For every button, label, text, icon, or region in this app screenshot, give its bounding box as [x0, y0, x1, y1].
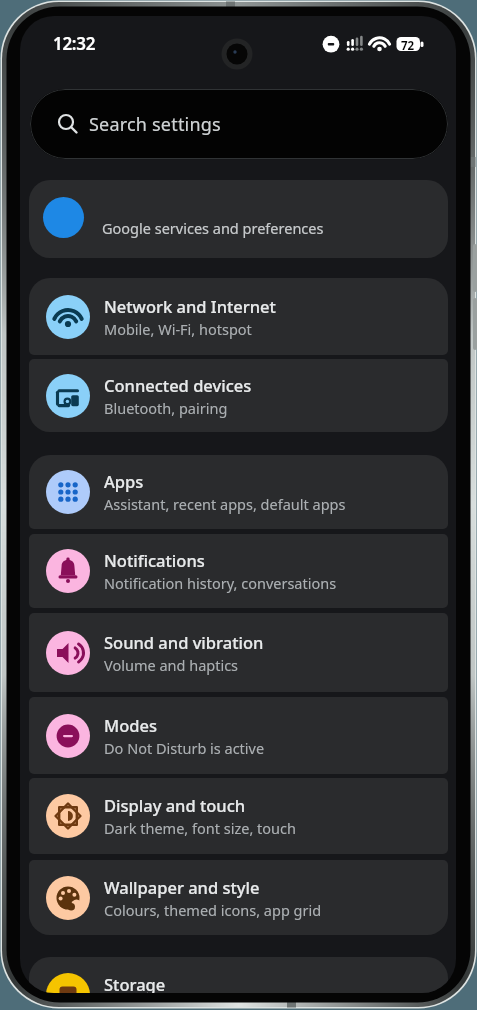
button[interactable]: Google services and preferences [29, 180, 448, 258]
staticText: Colours, themed icons, app grid [104, 900, 322, 920]
staticText: Notifications [104, 549, 205, 571]
staticText: Apps [104, 470, 144, 492]
button[interactable]: Display and touch [29, 778, 448, 854]
staticText: Sound and vibration [104, 631, 264, 653]
staticText: Dark theme, font size, touch [104, 818, 296, 838]
staticText: Do Not Disturb is active [104, 738, 265, 758]
button[interactable]: Notifications [29, 534, 448, 608]
staticText: Storage [104, 973, 166, 993]
button[interactable]: Wallpaper and style [29, 860, 448, 935]
staticText: Volume and haptics [104, 655, 239, 675]
staticText: Modes [104, 714, 157, 736]
staticText: 12:32 [53, 32, 96, 55]
button[interactable]: Network and Internet [29, 278, 448, 355]
staticText: Assistant, recent apps, default apps [104, 494, 346, 514]
staticText: Search settings [89, 112, 221, 137]
button[interactable]: Sound and vibration [29, 613, 448, 692]
staticText: Display and touch [104, 794, 246, 816]
button[interactable]: Connected devices [29, 359, 448, 432]
button[interactable]: Apps [29, 455, 448, 529]
staticText: Notification history, conversations [104, 573, 337, 593]
staticText: Mobile, Wi-Fi, hotspot [104, 319, 252, 339]
staticText: 72 [401, 38, 415, 54]
button[interactable]: Modes [29, 697, 448, 774]
staticText: Google services and preferences [102, 218, 324, 238]
staticText: Bluetooth, pairing [104, 398, 228, 418]
staticText: Connected devices [104, 374, 252, 396]
staticText: Network and Internet [104, 295, 276, 317]
staticText: Wallpaper and style [104, 876, 260, 898]
button[interactable]: Storage [29, 957, 448, 993]
button[interactable]: Search settings [30, 89, 448, 159]
